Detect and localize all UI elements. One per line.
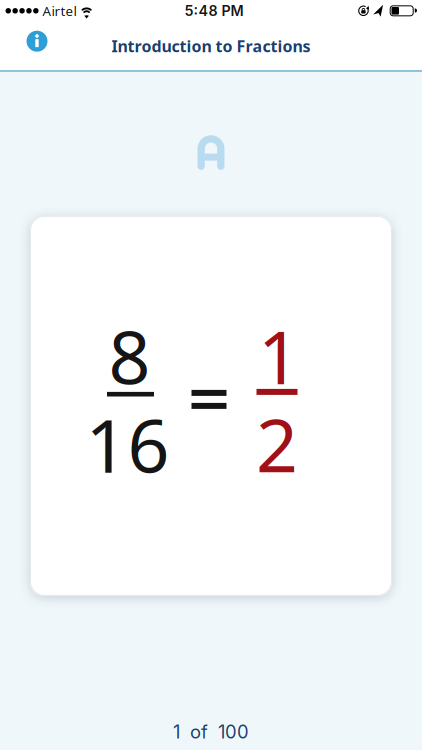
staticText: 16 <box>85 396 169 493</box>
staticText: Introduction to Fractions <box>111 35 310 57</box>
staticText: 2 <box>256 395 298 493</box>
staticText: 8 <box>108 307 150 405</box>
staticText: 5:48 PM <box>184 2 243 19</box>
button[interactable]: Info <box>22 26 52 56</box>
staticText: 1 <box>258 307 300 405</box>
staticText: Airtel <box>43 2 77 20</box>
staticText: 1 of 100 <box>173 721 249 743</box>
